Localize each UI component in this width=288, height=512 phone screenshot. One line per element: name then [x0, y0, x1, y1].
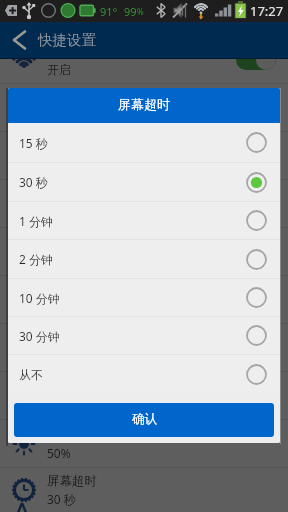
staticText: 位置信息	[47, 331, 97, 347]
button[interactable]: 蓝牙	[0, 84, 288, 131]
staticText: 10 分钟	[19, 290, 60, 306]
staticText: 15 秒	[19, 135, 48, 151]
button[interactable]: 30 秒	[8, 163, 280, 201]
staticText: 屏幕超时	[47, 473, 97, 489]
button[interactable]: 声音	[0, 180, 288, 227]
button[interactable]: Back	[0, 22, 288, 58]
staticText: 2 分钟	[19, 251, 53, 267]
button[interactable]: 10 分钟	[8, 279, 280, 316]
staticText: 30 秒	[19, 174, 48, 190]
button[interactable]	[236, 338, 276, 358]
staticText: 91°	[100, 4, 118, 19]
staticText: 已关闭	[47, 109, 83, 124]
button[interactable]: 2 分钟	[8, 240, 280, 278]
button[interactable]: 30 分钟	[8, 317, 280, 354]
button[interactable]: Back	[0, 22, 36, 58]
staticText: 快捷设置	[38, 31, 96, 49]
button[interactable]: 确认	[14, 403, 274, 437]
button[interactable]: 位置信息	[0, 324, 288, 371]
staticText: 1 分钟	[19, 213, 53, 229]
button[interactable]: 自动旋转	[0, 228, 288, 275]
staticText: %	[137, 6, 144, 17]
staticText: 屏幕超时	[118, 96, 170, 112]
button[interactable]: 移动数据	[0, 132, 288, 179]
staticText: 亮度	[47, 427, 72, 443]
staticText: 静音	[47, 205, 71, 220]
staticText: 开启	[47, 397, 71, 412]
button[interactable]: WLAN	[0, 36, 288, 83]
button[interactable]	[236, 146, 276, 166]
staticText: 已关闭	[47, 253, 83, 268]
button[interactable]: 15 秒	[8, 123, 280, 162]
staticText: WLAN	[47, 43, 83, 60]
button[interactable]: 飞行模式	[0, 276, 288, 323]
button[interactable]: 屏幕超时	[0, 468, 288, 512]
button[interactable]	[236, 50, 276, 70]
button[interactable]	[236, 386, 276, 406]
button[interactable]: 同步	[0, 372, 288, 419]
staticText: 99	[124, 4, 137, 19]
staticText: 从不	[19, 367, 43, 382]
staticText: 30 秒	[47, 491, 76, 507]
staticText: 30 分钟	[19, 328, 60, 344]
staticText: 飞行模式	[47, 283, 97, 299]
staticText: 已关闭	[47, 301, 83, 316]
staticText: 17:27	[250, 2, 284, 20]
button[interactable]: 1 分钟	[8, 202, 280, 239]
staticText: 确认	[132, 411, 157, 427]
staticText: 开启	[47, 62, 71, 77]
button[interactable]: 从不	[8, 355, 280, 393]
staticText: 50%	[47, 445, 71, 461]
button[interactable]: 亮度	[0, 420, 288, 467]
